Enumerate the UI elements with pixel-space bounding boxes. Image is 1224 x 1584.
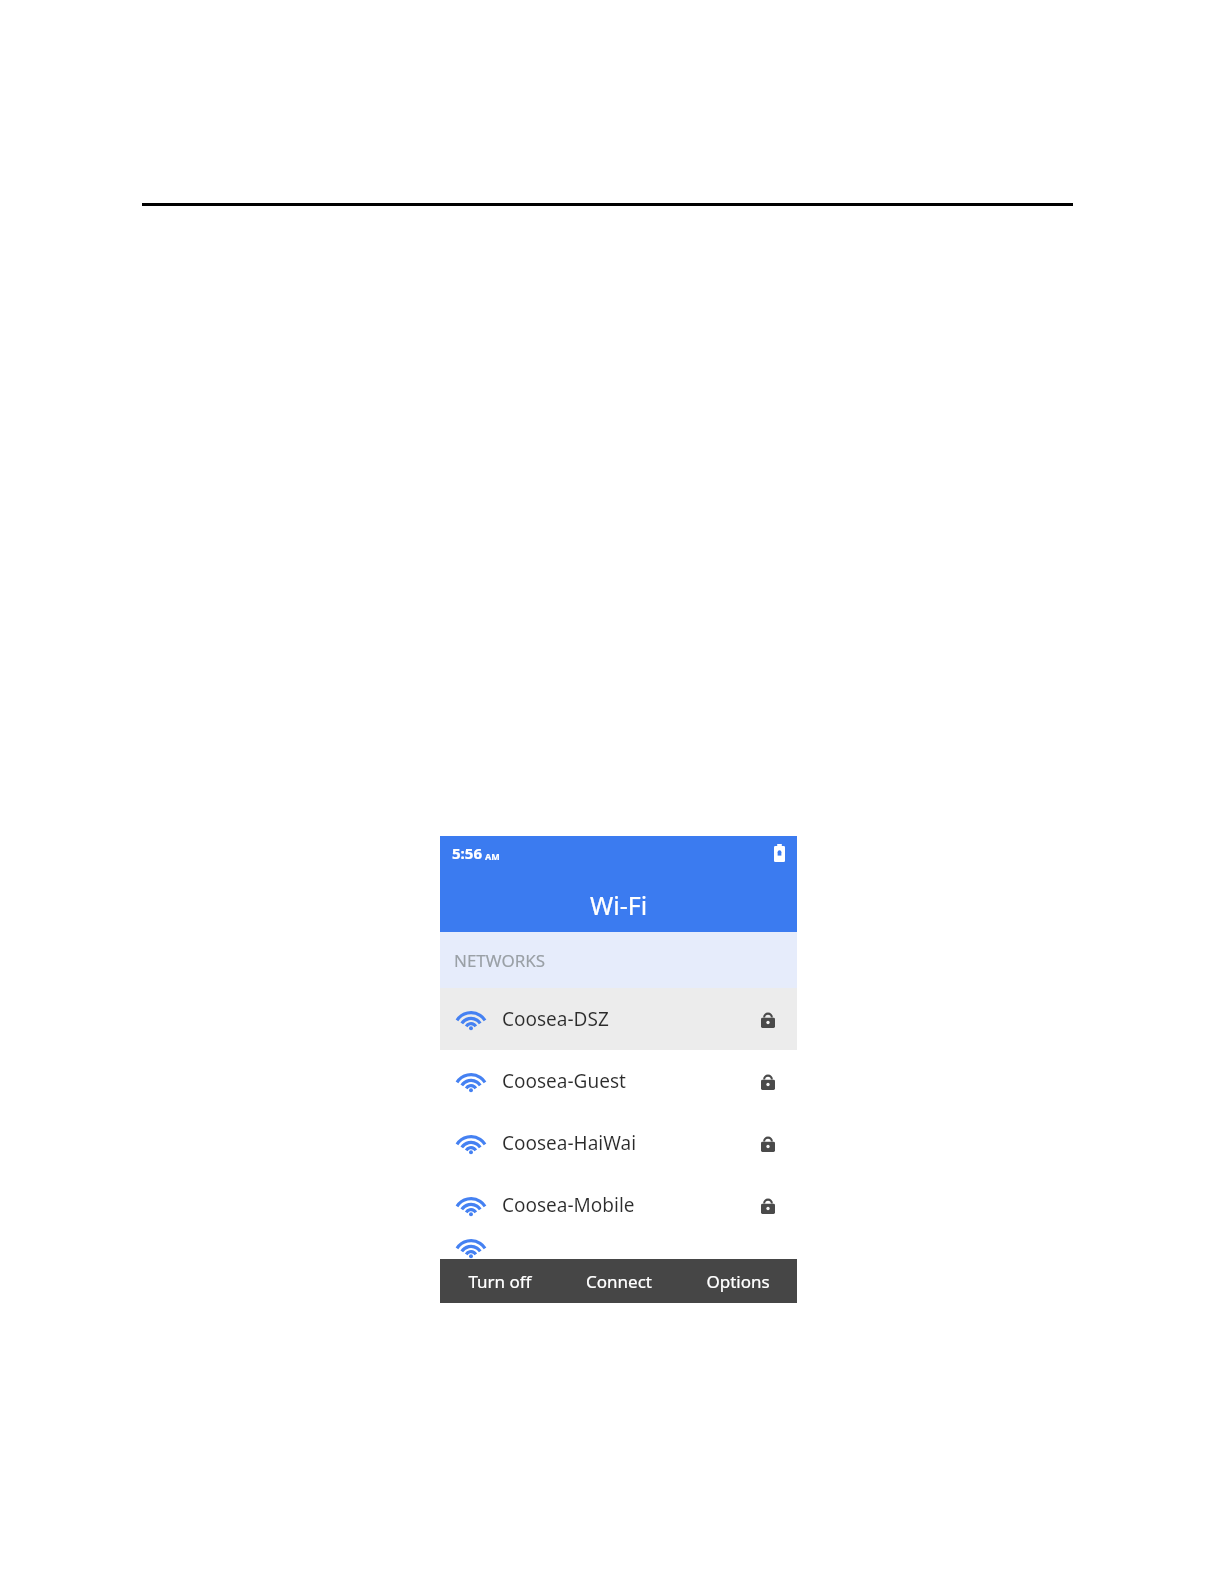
staticText: Coosea-DSZ <box>502 1006 609 1032</box>
staticText: Turn off <box>468 1270 532 1293</box>
button[interactable]: Coosea-HaiWai <box>440 1112 797 1174</box>
other: Secured network <box>761 1011 775 1028</box>
other: Secured network <box>761 1073 775 1090</box>
button[interactable]: Coosea-Guest <box>440 1050 797 1112</box>
staticText: Options <box>706 1270 770 1293</box>
button[interactable] <box>440 1236 797 1259</box>
staticText: Coosea-Mobile <box>502 1192 635 1218</box>
staticText: Coosea-HaiWai <box>502 1130 637 1156</box>
button[interactable]: Options <box>678 1259 797 1303</box>
staticText: NETWORKS <box>454 949 546 972</box>
staticText: Coosea-Guest <box>502 1068 626 1094</box>
other: Secured network <box>761 1197 775 1214</box>
other: Secured network <box>761 1135 775 1152</box>
staticText: Connect <box>586 1270 652 1293</box>
button[interactable]: Turn off <box>440 1259 559 1303</box>
staticText: AM <box>485 850 500 862</box>
staticText: Wi-Fi <box>590 888 648 922</box>
button[interactable]: Coosea-DSZ <box>440 988 797 1050</box>
other: Battery <box>774 844 785 862</box>
button[interactable]: Coosea-Mobile <box>440 1174 797 1236</box>
button[interactable]: Connect <box>559 1259 678 1303</box>
staticText: 5:56 <box>452 843 482 863</box>
